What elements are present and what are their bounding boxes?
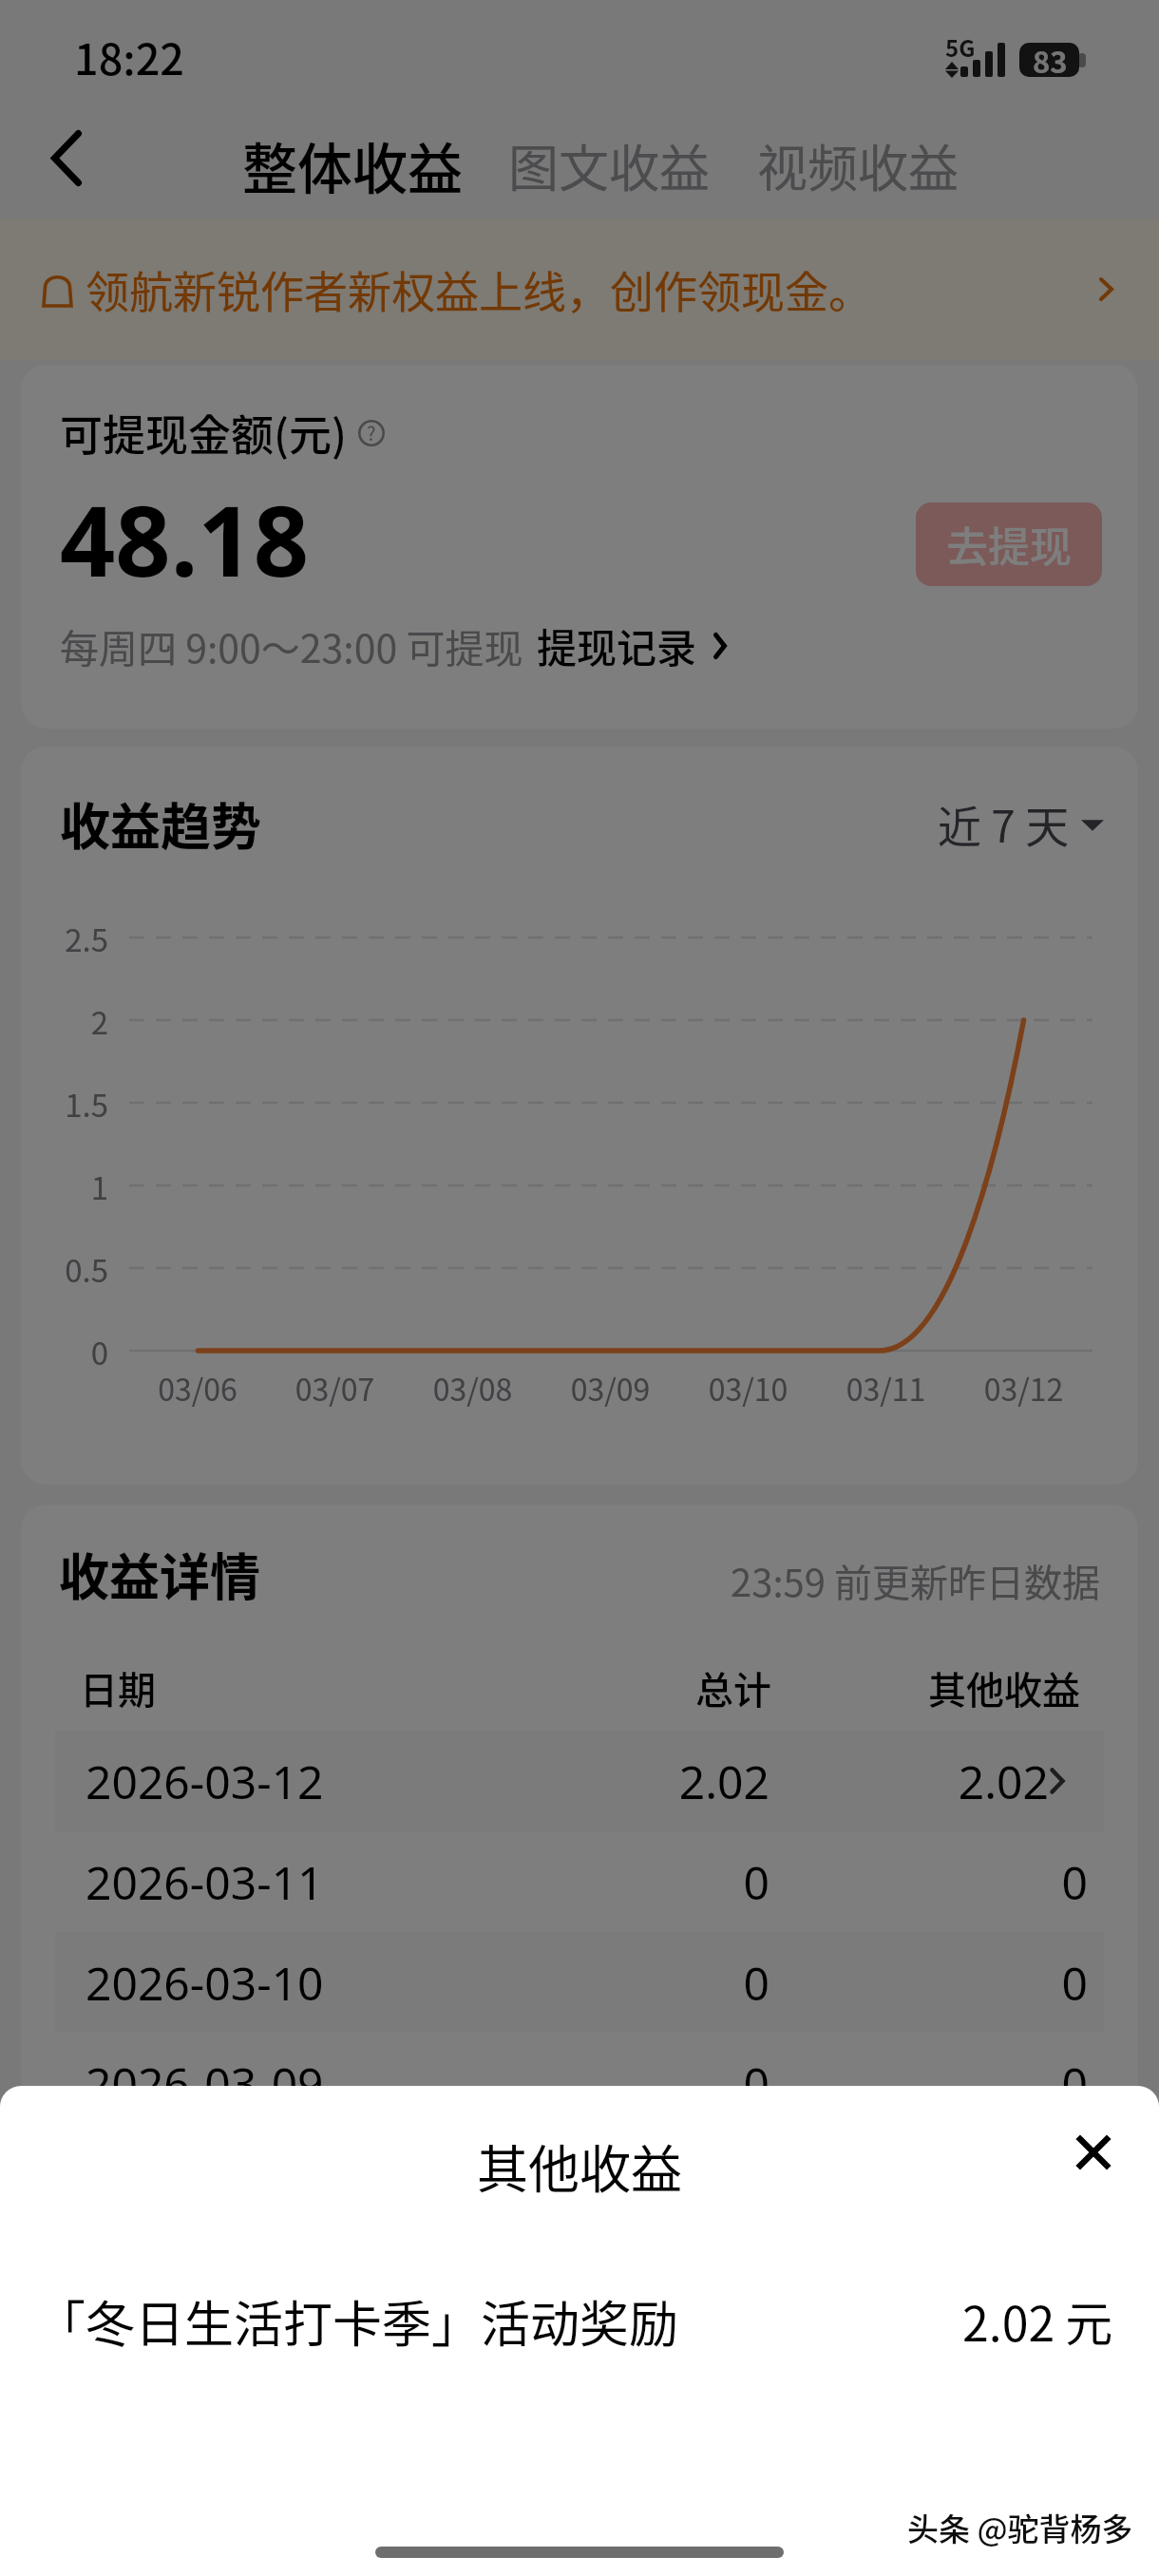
button[interactable]: 视频收益 (757, 129, 959, 202)
staticText: 总计 (21, 1660, 771, 1708)
staticText: 2.5 (40, 916, 108, 961)
staticText: 0 (55, 1851, 1088, 1913)
staticText: 视频收益 (757, 129, 959, 202)
staticText: 2026-03-11 (85, 1851, 324, 1913)
button[interactable]: 图文收益 (508, 129, 710, 202)
staticText: 0 (40, 1329, 108, 1374)
staticText: 1 (40, 1164, 108, 1209)
staticText: 收益详情 (59, 1538, 260, 1611)
staticText: 0 (55, 1851, 769, 1913)
button[interactable]: 「冬日生活打卡季」活动奖励 (36, 2268, 1113, 2373)
staticText: 2026-03-09 (85, 2053, 324, 2114)
staticText: 03/12 (955, 1366, 1092, 1410)
staticText: 2026-03-12 (85, 1751, 324, 1812)
staticText: 0.5 (40, 1246, 108, 1292)
staticText: 0 (55, 1952, 1088, 2014)
button[interactable]: Help (358, 420, 385, 446)
staticText: 提现记录 (537, 616, 697, 674)
staticText: 03/11 (817, 1366, 955, 1410)
button[interactable]: 2026-03-12 (55, 1731, 1104, 1831)
staticText: 图文收益 (508, 129, 710, 202)
button[interactable]: 2026-03-10 (55, 1932, 1104, 2033)
button[interactable]: 整体收益 (242, 125, 464, 205)
staticText: 48.18 (60, 473, 310, 605)
button[interactable]: Back (14, 105, 119, 210)
staticText: 去提现 (946, 514, 1072, 575)
staticText: 03/09 (541, 1366, 679, 1410)
staticText: 2 (40, 998, 108, 1044)
staticText: 近 7 天 (938, 792, 1070, 856)
staticText: 2.02 (55, 1751, 769, 1812)
button[interactable]: 2026-03-11 (55, 1831, 1104, 1932)
staticText: 领航新锐作者新权益上线，创作领现金。 (85, 257, 872, 321)
staticText: 2.02 (55, 1751, 1049, 1812)
staticText: 18:22 (74, 26, 185, 87)
staticText: 83 (1033, 39, 1068, 82)
staticText: 0 (55, 2053, 1088, 2114)
staticText: 03/10 (679, 1366, 817, 1410)
staticText: 每周四 9:00～23:00 可提现 (60, 617, 523, 673)
staticText: 其他收益 (21, 1660, 1080, 1708)
button[interactable]: 领航新锐作者新权益上线，创作领现金。 (0, 218, 1159, 360)
button[interactable]: 去提现 (916, 502, 1102, 586)
staticText: 0 (55, 2053, 769, 2114)
button[interactable]: 近 7 天 (938, 792, 1104, 856)
staticText: 「冬日生活打卡季」活动奖励 (36, 2285, 679, 2357)
staticText: 日期 (80, 1660, 156, 1708)
staticText: 可提现金额(元) (60, 402, 348, 464)
button[interactable]: 提现记录 (537, 616, 727, 674)
staticText: 23:59 前更新昨日数据 (731, 1553, 1100, 1608)
staticText: 0 (55, 1952, 769, 2014)
staticText: ? (367, 419, 376, 445)
staticText: 头条 @驼背杨多 (907, 2505, 1133, 2550)
staticText: 其他收益 (477, 2129, 682, 2203)
staticText: 03/07 (266, 1366, 404, 1410)
button[interactable]: Close (1059, 2118, 1128, 2187)
staticText: 整体收益 (242, 125, 464, 205)
staticText: 5G (945, 30, 976, 64)
staticText: 收益趋势 (60, 787, 261, 861)
staticText: 1.5 (40, 1081, 108, 1127)
staticText: 2.02 元 (962, 2286, 1113, 2355)
staticText: 03/06 (129, 1366, 266, 1410)
staticText: 2026-03-10 (85, 1952, 324, 2014)
staticText: 03/08 (404, 1366, 541, 1410)
button[interactable]: 2026-03-09 (55, 2033, 1104, 2133)
